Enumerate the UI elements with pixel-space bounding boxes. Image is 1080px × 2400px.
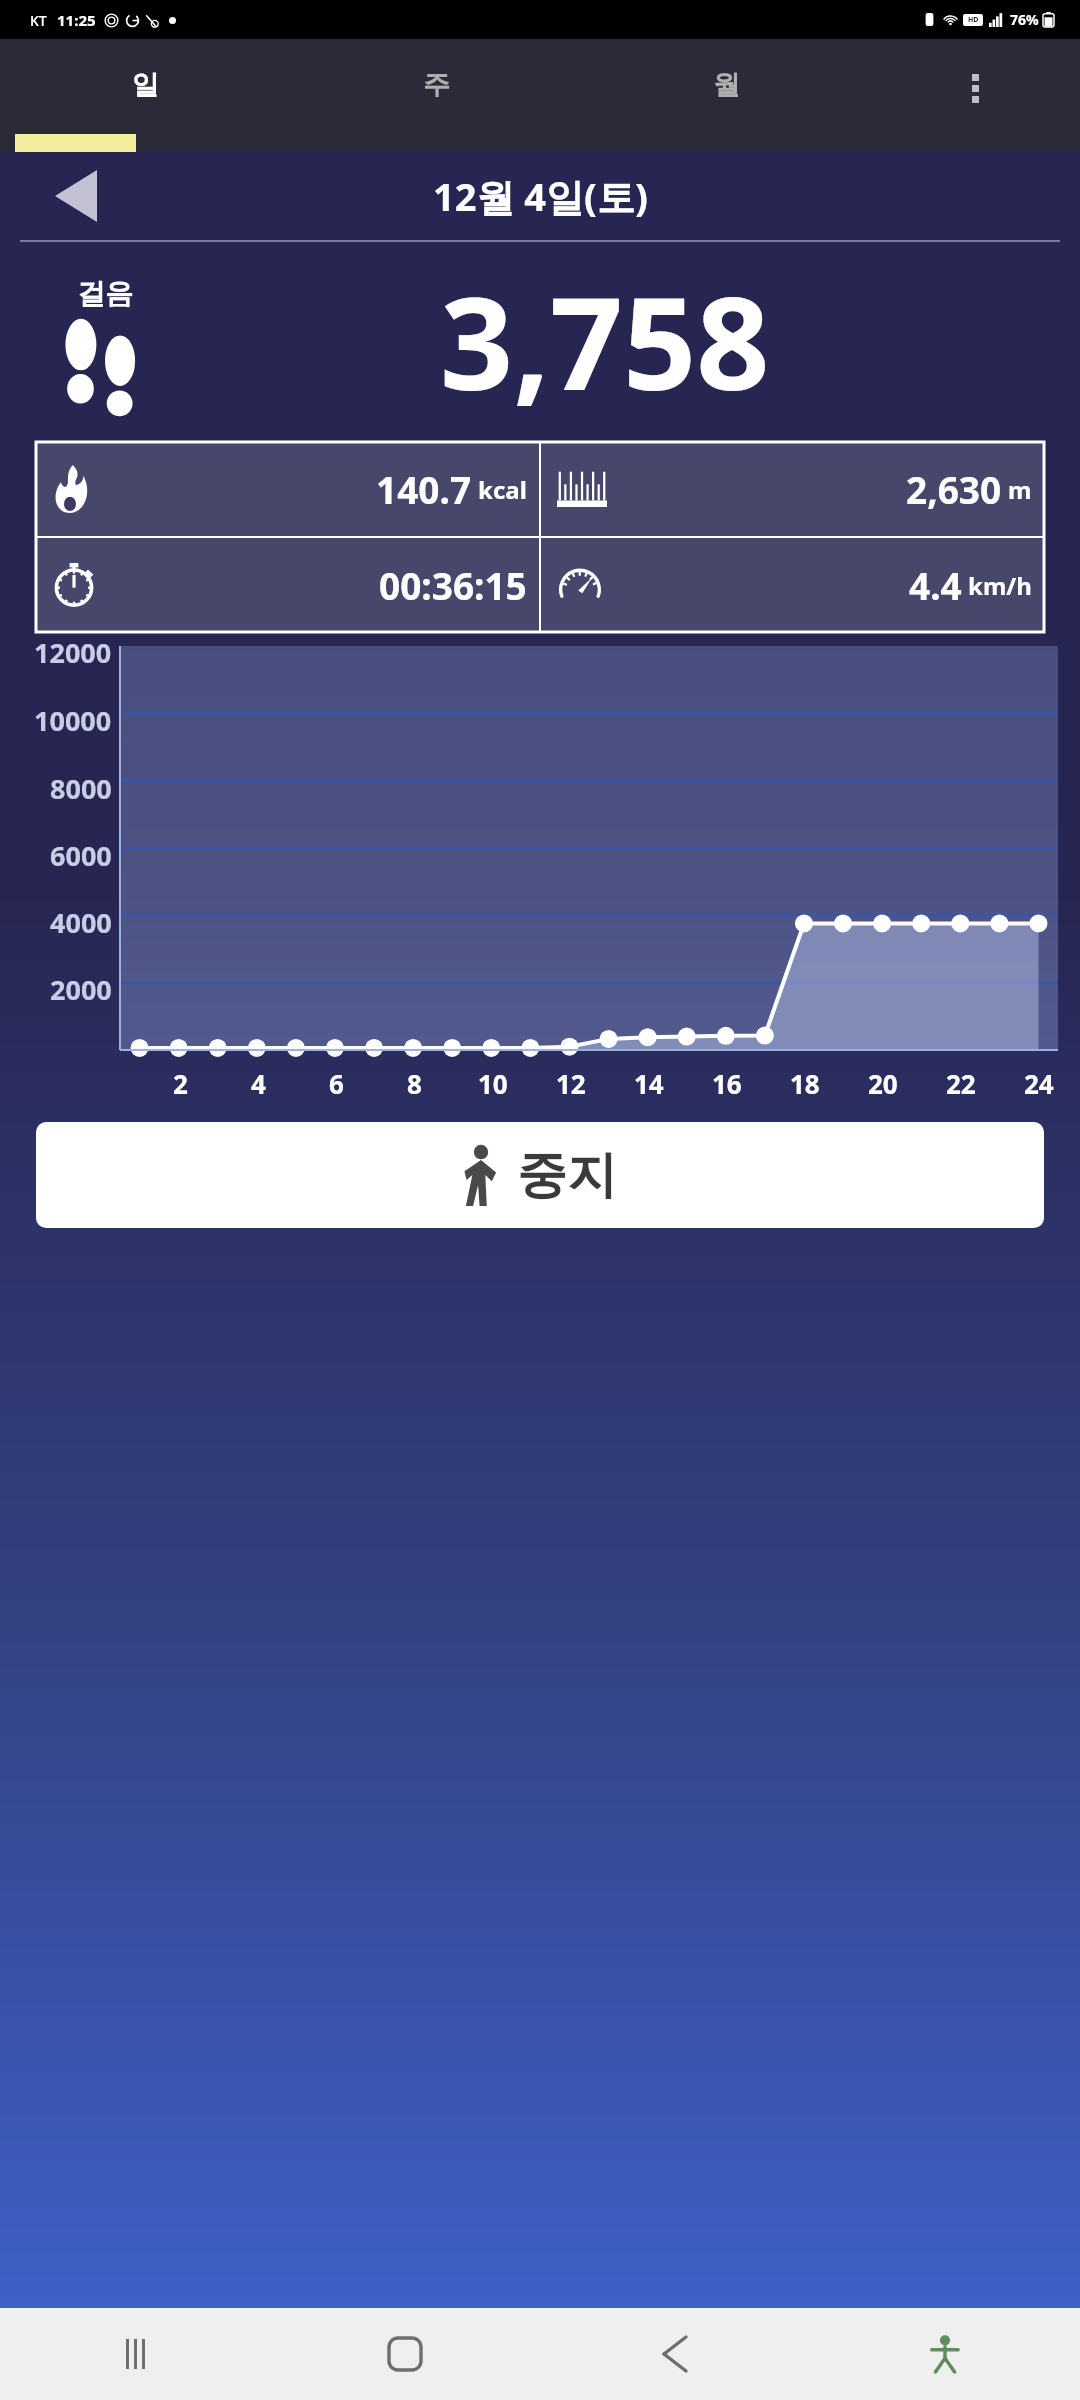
staticText: KT xyxy=(30,11,47,30)
staticText: 140.7 xyxy=(376,464,472,514)
button[interactable]: 중지 xyxy=(36,1122,1044,1228)
staticText: 3,758 xyxy=(440,253,770,427)
staticText: 00:36:15 xyxy=(379,560,527,610)
staticText: 12 xyxy=(556,1066,586,1101)
staticText: kcal xyxy=(478,473,527,506)
button[interactable]: 일 xyxy=(0,39,291,152)
staticText: HD xyxy=(968,15,979,25)
staticText: 12000 xyxy=(34,634,112,671)
staticText: 8000 xyxy=(50,770,112,807)
button[interactable]: Home xyxy=(270,2308,540,2400)
staticText: 4000 xyxy=(50,904,112,941)
staticText: m xyxy=(1008,473,1032,506)
staticText: 20 xyxy=(868,1066,898,1101)
button[interactable]: Recents xyxy=(0,2308,270,2400)
staticText: km/h xyxy=(968,569,1032,602)
staticText: 22 xyxy=(946,1066,976,1101)
staticText: 12월 4일(토) xyxy=(433,170,648,222)
staticText: 걸음 xyxy=(77,276,133,311)
staticText: 주 xyxy=(423,68,450,102)
staticText: 10000 xyxy=(34,702,112,739)
staticText: 8 xyxy=(407,1066,422,1101)
staticText: 24 xyxy=(1024,1066,1054,1101)
button[interactable]: 주 xyxy=(291,39,581,152)
staticText: 10 xyxy=(478,1066,508,1101)
button[interactable]: More options xyxy=(871,39,1080,152)
staticText: 2000 xyxy=(50,971,112,1008)
staticText: 2 xyxy=(173,1066,188,1101)
staticText: 16 xyxy=(712,1066,742,1101)
staticText: 6 xyxy=(329,1066,344,1101)
staticText: 11:25 xyxy=(57,10,96,30)
button[interactable]: 월 xyxy=(581,39,871,152)
staticText: 2,630 xyxy=(906,464,1002,514)
staticText: 76% xyxy=(1010,10,1039,29)
staticText: 6000 xyxy=(50,837,112,874)
staticText: 18 xyxy=(790,1066,820,1101)
button[interactable]: Previous day xyxy=(45,165,107,227)
staticText: 4.4 xyxy=(909,560,962,610)
staticText: 일 xyxy=(132,68,159,102)
staticText: 월 xyxy=(713,68,740,102)
button[interactable]: Accessibility xyxy=(810,2308,1080,2400)
button[interactable]: Back xyxy=(540,2308,810,2400)
staticText: 4 xyxy=(251,1066,266,1101)
staticText: 14 xyxy=(634,1066,664,1101)
staticText: 중지 xyxy=(517,1144,617,1207)
